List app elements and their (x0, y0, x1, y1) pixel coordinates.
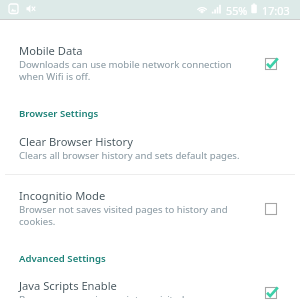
staticText: 55% (226, 3, 248, 18)
staticText: Browser Settings (19, 107, 99, 120)
button[interactable]: Java Scripts Enable (260, 283, 282, 300)
staticText: Mobile Data (19, 43, 83, 58)
button[interactable]: Clear Browser History (0, 120, 300, 164)
button[interactable]: Java Scripts Enable (0, 265, 300, 300)
staticText: Incognitio Mode (19, 188, 106, 203)
staticText: Java Scripts Enable (19, 278, 117, 293)
staticText: Browser not saves visited pages to histo… (19, 203, 228, 228)
staticText: Downloads can use mobile network connect… (19, 58, 232, 83)
button[interactable]: Incognitio Mode (0, 175, 300, 230)
button[interactable]: Incognitio Mode (260, 198, 282, 220)
staticText: Browser can run javascript on visited pa… (19, 293, 217, 298)
staticText: Advanced Settings (19, 252, 106, 265)
staticText: 17:03 (262, 3, 290, 18)
button[interactable]: Mobile Data (0, 20, 300, 85)
staticText: Clear Browser History (19, 134, 133, 149)
button[interactable]: Mobile Data (260, 53, 282, 75)
staticText: Clears all browser history and sets defa… (19, 149, 240, 162)
